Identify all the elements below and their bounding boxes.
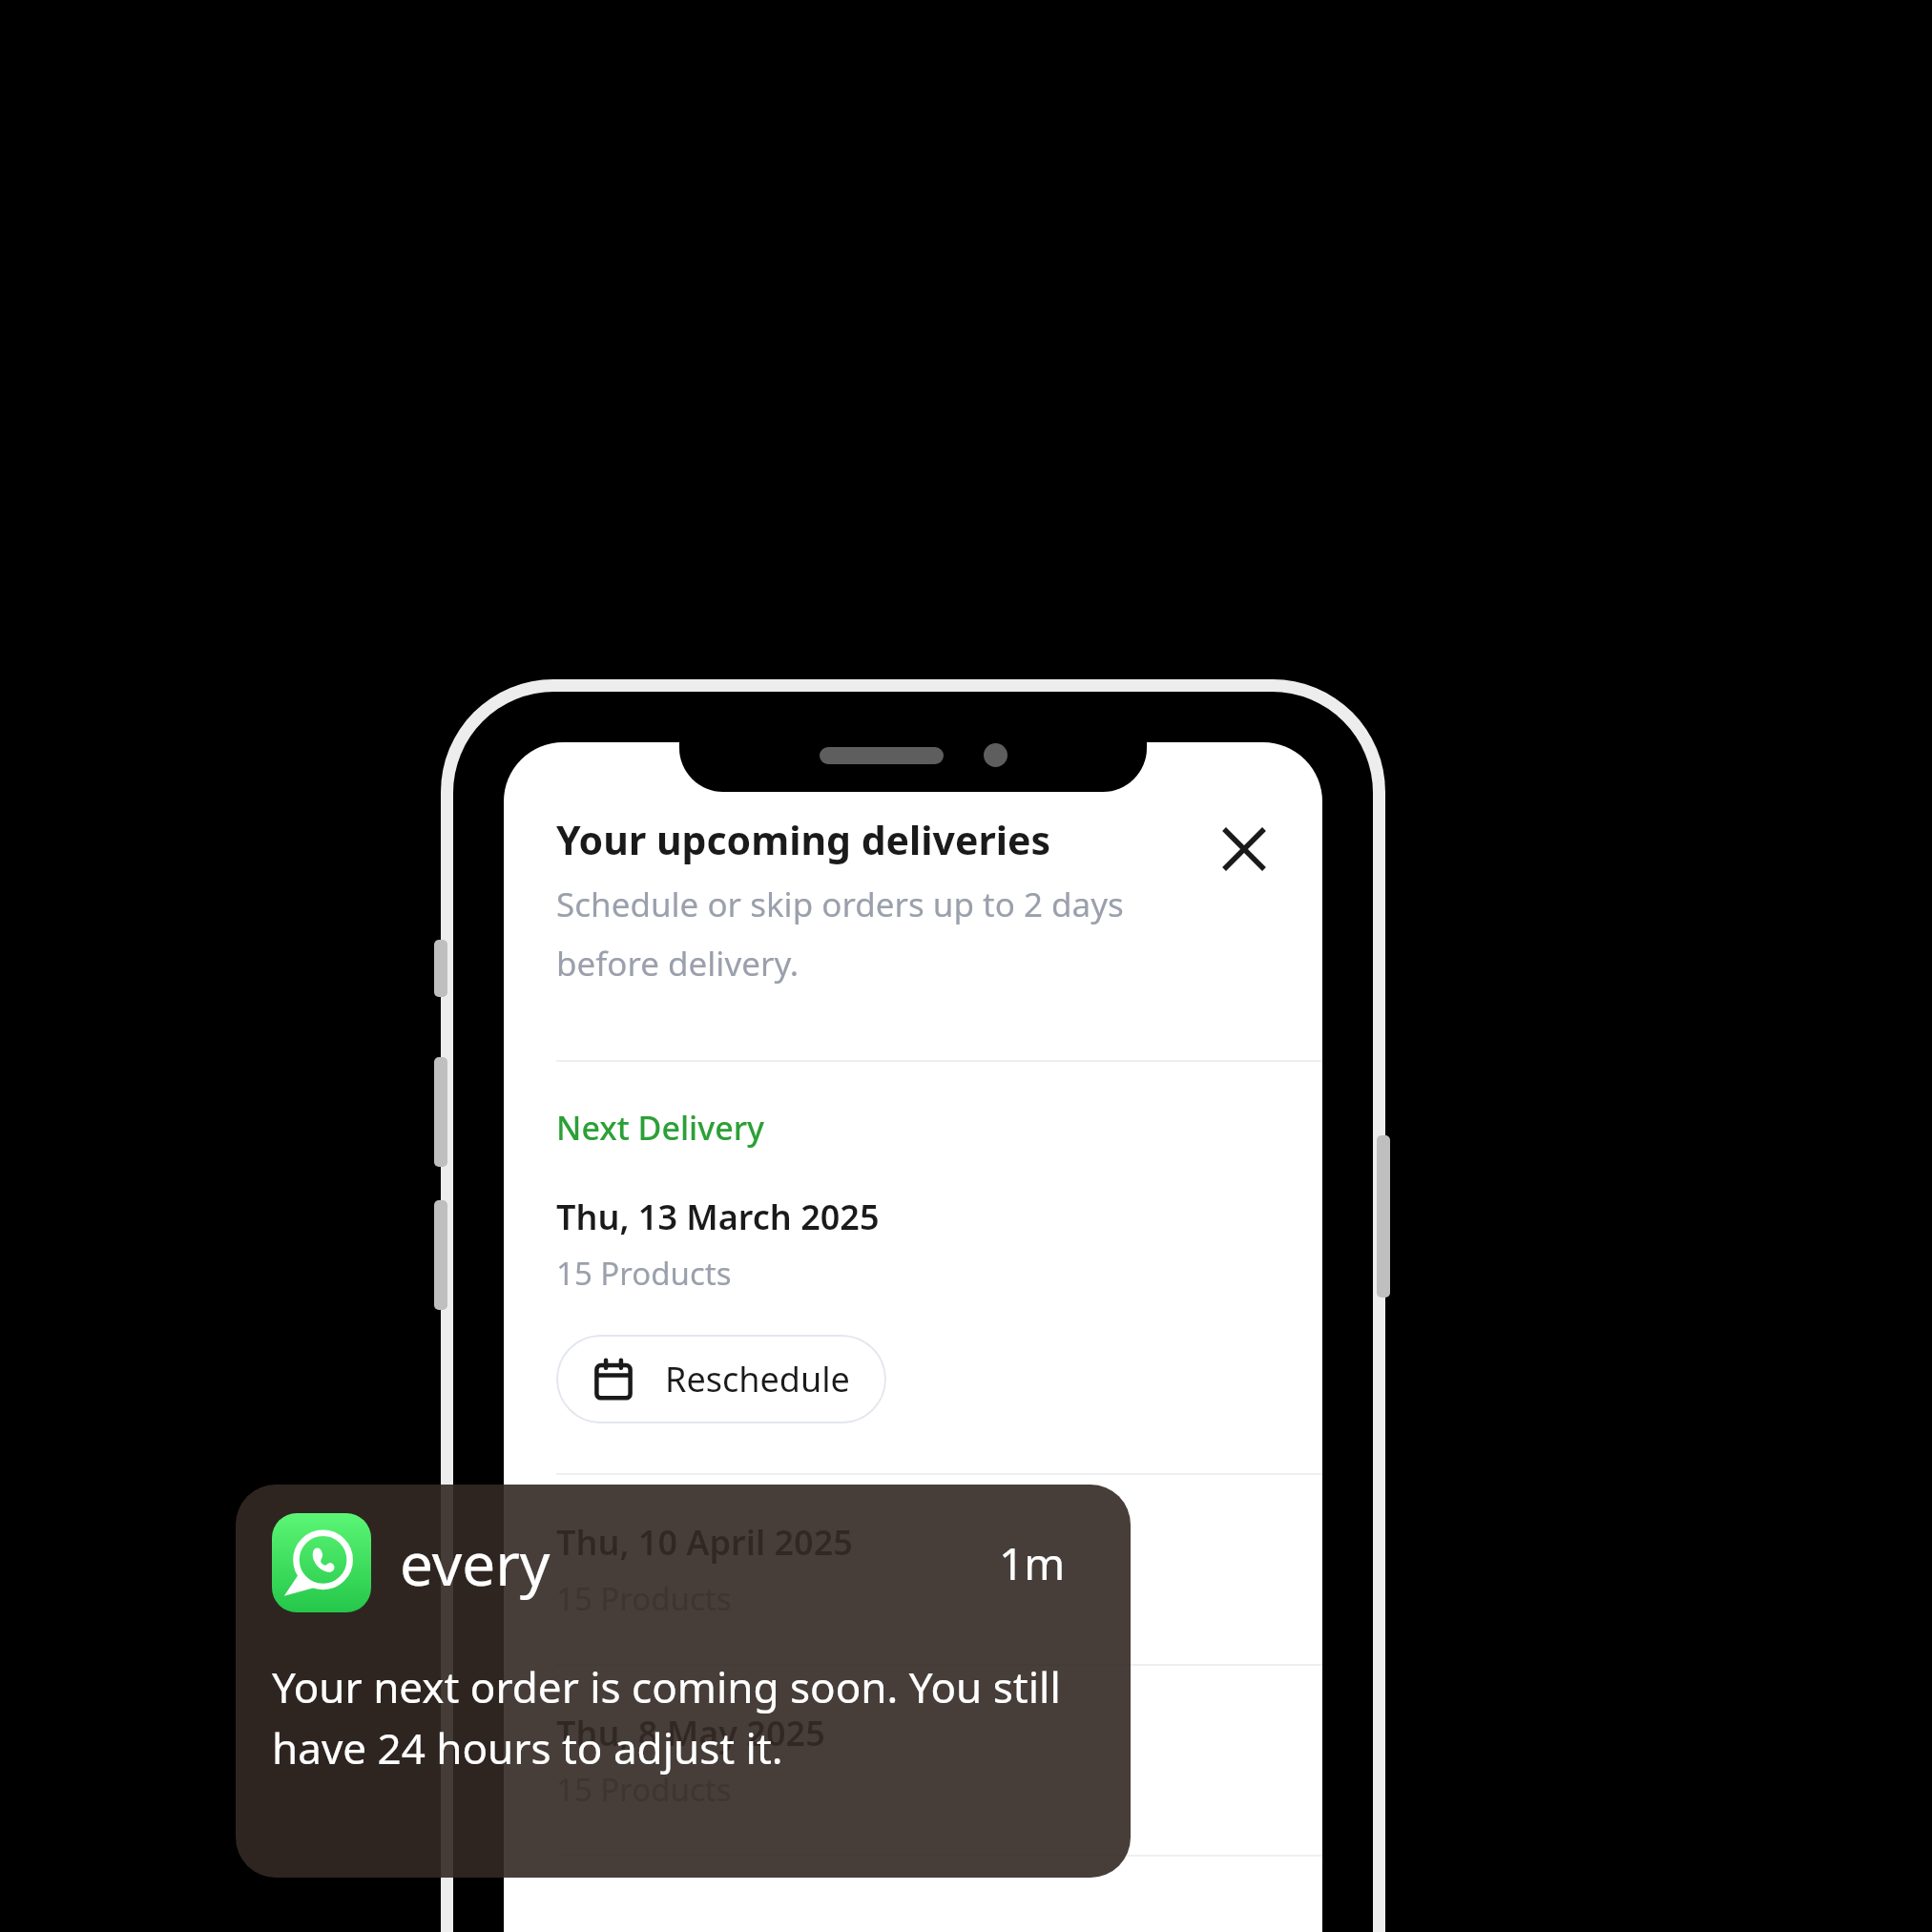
staticText: Reschedule xyxy=(665,1356,850,1402)
staticText: 15 Products xyxy=(556,1768,732,1811)
button[interactable]: Close xyxy=(1214,819,1275,880)
staticText: Thu, 10 April 2025 xyxy=(556,1519,853,1566)
staticText: Schedule or skip orders up to 2 days bef… xyxy=(556,882,1214,986)
staticText: Your next order is coming soon. You stil… xyxy=(272,1658,1094,1776)
staticText: every xyxy=(400,1523,551,1603)
button[interactable]: Reschedule xyxy=(556,1335,886,1423)
staticText: Your upcoming deliveries xyxy=(556,813,1051,866)
staticText: Thu, 13 March 2025 xyxy=(556,1194,880,1240)
staticText: 1m xyxy=(999,1533,1066,1593)
staticText: Thu, 8 May 2025 xyxy=(556,1710,825,1756)
staticText: 15 Products xyxy=(556,1577,732,1620)
staticText: 15 Products xyxy=(556,1252,732,1295)
button[interactable]: every xyxy=(236,1485,1131,1878)
staticText: Next Delivery xyxy=(556,1106,765,1150)
